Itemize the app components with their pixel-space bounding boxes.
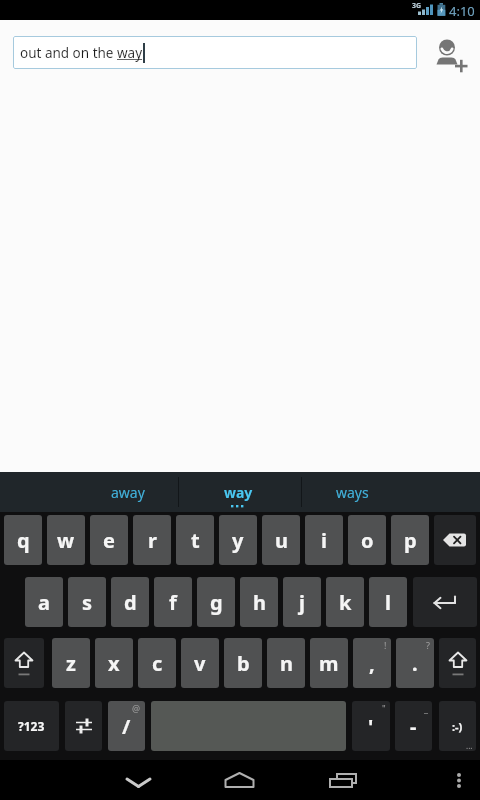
staticText: z bbox=[66, 650, 76, 677]
button[interactable]: u bbox=[262, 515, 300, 565]
button[interactable]: i bbox=[305, 515, 343, 565]
staticText: ?123 bbox=[18, 718, 45, 734]
staticText: g bbox=[210, 589, 223, 616]
button[interactable] bbox=[434, 515, 476, 565]
staticText: . bbox=[412, 650, 418, 677]
button[interactable]: / bbox=[108, 701, 145, 751]
staticText: _ bbox=[424, 702, 428, 714]
staticText: v bbox=[194, 650, 206, 677]
button[interactable]: ?123 bbox=[4, 701, 59, 751]
button[interactable]: f bbox=[154, 577, 192, 627]
staticText: c bbox=[152, 650, 163, 677]
button[interactable]: w bbox=[47, 515, 85, 565]
button[interactable]: ' bbox=[352, 701, 390, 751]
button[interactable]: . bbox=[396, 638, 434, 688]
button[interactable]: y bbox=[219, 515, 257, 565]
staticText: p bbox=[404, 527, 417, 554]
button[interactable]: away bbox=[88, 472, 168, 512]
button[interactable]: p bbox=[391, 515, 429, 565]
button[interactable]: g bbox=[197, 577, 235, 627]
button[interactable]: v bbox=[181, 638, 219, 688]
button[interactable]: n bbox=[267, 638, 305, 688]
staticText: j bbox=[299, 589, 305, 616]
staticText: r bbox=[148, 527, 157, 554]
staticText: , bbox=[369, 650, 375, 677]
button[interactable]: :-) bbox=[439, 701, 476, 751]
staticText: 3G bbox=[412, 1, 422, 11]
staticText: ... bbox=[466, 740, 473, 751]
button[interactable]: ways bbox=[312, 472, 392, 512]
staticText: ! bbox=[384, 639, 387, 651]
button[interactable]: x bbox=[95, 638, 133, 688]
staticText: f bbox=[169, 589, 177, 616]
button[interactable]: h bbox=[240, 577, 278, 627]
button[interactable] bbox=[432, 38, 470, 76]
staticText: y bbox=[232, 527, 244, 554]
staticText: ? bbox=[426, 639, 430, 651]
staticText: ways bbox=[336, 483, 369, 502]
staticText: @ bbox=[132, 702, 141, 714]
button[interactable] bbox=[444, 760, 474, 800]
button[interactable]: z bbox=[52, 638, 90, 688]
staticText: s bbox=[82, 589, 93, 616]
staticText: away bbox=[111, 483, 145, 502]
staticText: way bbox=[117, 44, 143, 62]
button[interactable]: out and on the bbox=[13, 36, 417, 69]
button[interactable]: j bbox=[283, 577, 321, 627]
button[interactable] bbox=[4, 638, 44, 688]
staticText: q bbox=[17, 527, 30, 554]
staticText: h bbox=[253, 589, 266, 616]
button[interactable]: q bbox=[4, 515, 42, 565]
button[interactable]: s bbox=[68, 577, 106, 627]
staticText: ' bbox=[368, 713, 374, 740]
staticText: d bbox=[124, 589, 137, 616]
staticText: / bbox=[122, 713, 131, 740]
staticText: e bbox=[103, 527, 115, 554]
button[interactable]: m bbox=[310, 638, 348, 688]
button[interactable] bbox=[65, 701, 102, 751]
button[interactable]: , bbox=[353, 638, 391, 688]
button[interactable] bbox=[210, 760, 270, 800]
staticText: i bbox=[321, 527, 327, 554]
staticText: o bbox=[361, 527, 374, 554]
button[interactable]: - bbox=[395, 701, 432, 751]
button[interactable]: k bbox=[326, 577, 364, 627]
button[interactable]: t bbox=[176, 515, 214, 565]
button[interactable]: o bbox=[348, 515, 386, 565]
staticText: x bbox=[108, 650, 120, 677]
staticText: - bbox=[410, 713, 417, 740]
staticText: l bbox=[385, 589, 391, 616]
staticText: w bbox=[57, 527, 75, 554]
staticText: n bbox=[280, 650, 293, 677]
button[interactable] bbox=[439, 638, 476, 688]
staticText: way bbox=[224, 483, 253, 502]
button[interactable]: l bbox=[369, 577, 407, 627]
button[interactable]: d bbox=[111, 577, 149, 627]
button[interactable]: b bbox=[224, 638, 262, 688]
button[interactable] bbox=[413, 577, 477, 627]
button[interactable] bbox=[108, 760, 168, 800]
staticText: 4:10 bbox=[449, 2, 475, 20]
staticText: b bbox=[237, 650, 250, 677]
staticText: " bbox=[382, 702, 386, 714]
button[interactable]: a bbox=[25, 577, 63, 627]
staticText: out and on the bbox=[20, 44, 117, 62]
staticText: u bbox=[275, 527, 288, 554]
button[interactable]: way bbox=[198, 472, 278, 512]
button[interactable]: r bbox=[133, 515, 171, 565]
staticText: t bbox=[191, 527, 200, 554]
staticText: k bbox=[339, 589, 352, 616]
staticText: a bbox=[38, 589, 50, 616]
staticText: m bbox=[319, 650, 339, 677]
button[interactable] bbox=[313, 760, 373, 800]
button[interactable]: e bbox=[90, 515, 128, 565]
button[interactable]: c bbox=[138, 638, 176, 688]
staticText: :-) bbox=[452, 719, 463, 734]
